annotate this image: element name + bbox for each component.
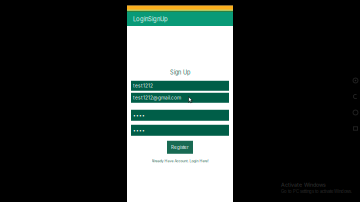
staticText: Register xyxy=(171,144,189,150)
button[interactable]: LoginSignUp xyxy=(127,12,233,26)
button[interactable]: Already Have Account. Login Here! xyxy=(151,159,208,163)
staticText: •••• xyxy=(133,127,145,133)
staticText: •••• xyxy=(133,112,145,118)
staticText: test1212@gmail.com xyxy=(133,95,181,101)
staticText: Sign Up xyxy=(170,69,190,76)
button[interactable]: •••• xyxy=(131,110,229,121)
staticText: Go to PC settings to activate Windows. xyxy=(281,189,352,194)
button[interactable]: •••• xyxy=(131,125,229,136)
button[interactable]: test1212 xyxy=(131,81,229,91)
button[interactable]: Register xyxy=(167,141,193,154)
button[interactable]: test1212@gmail.com xyxy=(131,93,229,103)
staticText: LoginSignUp xyxy=(133,15,168,23)
staticText: test1212 xyxy=(133,83,153,89)
staticText: Activate Windows xyxy=(281,181,326,188)
staticText: Already Have Account. Login Here! xyxy=(151,159,208,163)
